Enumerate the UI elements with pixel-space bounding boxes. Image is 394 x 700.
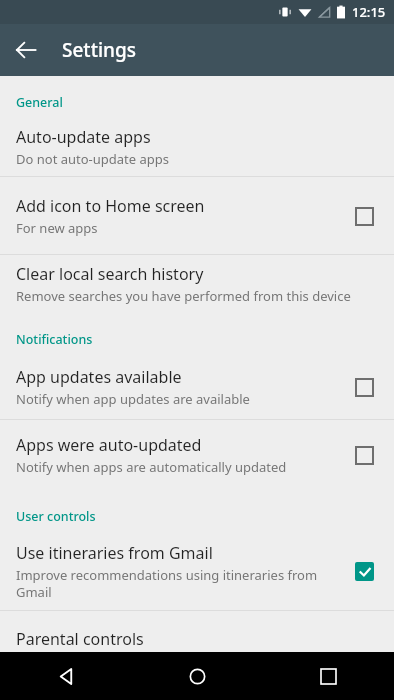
button[interactable]: App updates available — [0, 355, 394, 419]
staticText: Remove searches you have performed from … — [16, 287, 351, 305]
staticText: App updates available — [16, 366, 182, 388]
button[interactable]: Parental controls — [0, 611, 394, 652]
staticText: Clear local search history — [16, 263, 204, 285]
button[interactable]: Back — [0, 652, 132, 700]
staticText: Auto-update apps — [16, 126, 151, 148]
button[interactable]: Add icon to Home screen — [340, 192, 388, 240]
button[interactable]: Use itineraries from Gmail — [0, 532, 394, 610]
staticText: Use itineraries from Gmail — [16, 542, 213, 564]
staticText: Parental controls — [16, 628, 144, 650]
staticText: Notify when apps are automatically updat… — [16, 458, 287, 476]
button[interactable]: Apps were auto-updated — [340, 431, 388, 479]
staticText: Settings — [62, 37, 136, 63]
staticText: Apps were auto-updated — [16, 434, 202, 456]
button[interactable]: Use itineraries from Gmail — [340, 547, 388, 595]
button[interactable]: Recent apps — [263, 652, 394, 700]
button[interactable]: Apps were auto-updated — [0, 420, 394, 490]
staticText: Notify when app updates are available — [16, 390, 250, 408]
staticText: Improve recommendations using itinerarie… — [16, 566, 318, 601]
button[interactable]: Auto-update apps — [0, 118, 394, 176]
staticText: Do not auto-update apps — [16, 150, 170, 168]
button[interactable]: Add icon to Home screen — [0, 177, 394, 254]
button[interactable]: Home — [132, 652, 263, 700]
button[interactable]: Back — [0, 24, 52, 76]
staticText: For new apps — [16, 219, 98, 237]
staticText: Add icon to Home screen — [16, 195, 205, 217]
button[interactable]: App updates available — [340, 363, 388, 411]
staticText: General — [16, 94, 63, 111]
staticText: Notifications — [16, 331, 93, 348]
staticText: User controls — [16, 508, 96, 525]
button[interactable]: Clear local search history — [0, 255, 394, 313]
staticText: 12:15 — [352, 3, 386, 21]
